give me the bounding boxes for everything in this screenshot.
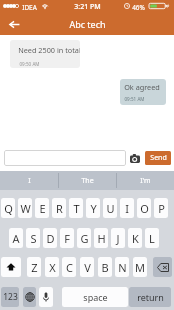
staticText: 46% bbox=[132, 3, 145, 12]
button[interactable]: D bbox=[43, 228, 57, 248]
staticText: F bbox=[64, 231, 70, 246]
staticText: N bbox=[118, 260, 127, 275]
staticText: 123 bbox=[3, 291, 18, 303]
button[interactable]: Back bbox=[5, 15, 23, 33]
staticText: 3:21 PM bbox=[74, 2, 101, 12]
staticText: X bbox=[49, 260, 56, 275]
button[interactable]: I bbox=[120, 198, 134, 218]
staticText: A bbox=[12, 231, 20, 246]
button[interactable]: F bbox=[60, 228, 74, 248]
staticText: 09:50 AM bbox=[19, 61, 40, 67]
button[interactable]: O bbox=[137, 198, 151, 218]
button[interactable]: Voice input bbox=[39, 287, 53, 307]
staticText: U bbox=[106, 201, 115, 216]
staticText: Ok agreed bbox=[124, 82, 160, 92]
button[interactable]: T bbox=[69, 198, 83, 218]
staticText: return bbox=[137, 291, 164, 303]
staticText: IDEA bbox=[22, 3, 37, 12]
staticText: C bbox=[66, 260, 73, 275]
staticText: J bbox=[116, 231, 120, 246]
staticText: The bbox=[81, 176, 94, 186]
button[interactable]: Camera bbox=[129, 151, 141, 165]
button[interactable]: G bbox=[77, 228, 91, 248]
button[interactable]: S bbox=[26, 228, 40, 248]
button[interactable]: L bbox=[145, 228, 159, 248]
button[interactable]: return bbox=[129, 287, 171, 307]
staticText: Q bbox=[4, 201, 13, 216]
staticText: L bbox=[149, 231, 155, 246]
button[interactable]: Ok agreed bbox=[120, 79, 166, 105]
button[interactable]: Change keyboard bbox=[23, 287, 36, 307]
staticText: W bbox=[20, 201, 31, 216]
staticText: V bbox=[84, 260, 91, 275]
button[interactable]: B bbox=[98, 257, 112, 277]
button[interactable]: P bbox=[154, 198, 168, 218]
button[interactable]: Z bbox=[27, 257, 41, 277]
staticText: Abc tech bbox=[69, 18, 106, 30]
button[interactable]: H bbox=[94, 228, 108, 248]
button[interactable]: space bbox=[62, 287, 128, 307]
button[interactable]: Need 2500 in total bbox=[10, 40, 80, 68]
button[interactable]: Backspace bbox=[153, 257, 172, 277]
staticText: I'm bbox=[140, 176, 151, 186]
staticText: G bbox=[80, 231, 89, 246]
button[interactable]: I'm bbox=[116, 171, 174, 190]
staticText: M bbox=[135, 260, 145, 275]
staticText: Send bbox=[150, 153, 167, 163]
staticText: I bbox=[125, 201, 129, 216]
staticText: T bbox=[73, 201, 80, 216]
button[interactable]: C bbox=[62, 257, 76, 277]
button[interactable]: M bbox=[133, 257, 147, 277]
button[interactable]: J bbox=[111, 228, 125, 248]
staticText: B bbox=[101, 260, 109, 275]
button[interactable]: E bbox=[35, 198, 49, 218]
button[interactable] bbox=[4, 150, 126, 166]
staticText: O bbox=[140, 201, 149, 216]
staticText: 09:51 AM bbox=[124, 96, 145, 102]
staticText: space bbox=[83, 291, 108, 303]
button[interactable]: N bbox=[115, 257, 129, 277]
button[interactable]: Send bbox=[145, 151, 171, 165]
staticText: K bbox=[132, 231, 139, 246]
staticText: R bbox=[56, 201, 63, 216]
button[interactable]: Shift bbox=[1, 257, 21, 277]
staticText: Y bbox=[90, 201, 97, 216]
button[interactable]: V bbox=[80, 257, 94, 277]
button[interactable]: A bbox=[9, 228, 23, 248]
staticText: S bbox=[30, 231, 37, 246]
button[interactable]: U bbox=[103, 198, 117, 218]
staticText: E bbox=[39, 201, 46, 216]
button[interactable]: I bbox=[0, 171, 58, 190]
button[interactable]: 123 bbox=[1, 287, 19, 307]
staticText: H bbox=[97, 231, 106, 246]
button[interactable]: Y bbox=[86, 198, 100, 218]
button[interactable]: W bbox=[18, 198, 32, 218]
button[interactable]: The bbox=[58, 171, 116, 190]
staticText: Need 2500 in total bbox=[18, 45, 80, 55]
staticText: P bbox=[158, 201, 165, 216]
button[interactable]: R bbox=[52, 198, 66, 218]
staticText: Z bbox=[31, 260, 38, 275]
staticText: D bbox=[46, 231, 55, 246]
staticText: I bbox=[28, 176, 31, 186]
button[interactable]: X bbox=[45, 257, 59, 277]
button[interactable]: Q bbox=[1, 198, 15, 218]
button[interactable]: K bbox=[128, 228, 142, 248]
